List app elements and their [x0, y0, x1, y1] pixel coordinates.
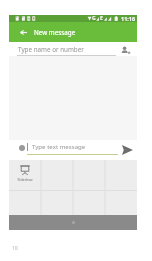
staticText: 11:16	[121, 15, 136, 22]
button[interactable]: Add contact	[117, 43, 133, 57]
button[interactable]: Home	[69, 218, 78, 227]
staticText: E	[100, 15, 103, 22]
staticText: Type name or number	[18, 45, 84, 54]
button[interactable]: Slideshow	[9, 165, 41, 187]
staticText: Slideshow	[17, 178, 33, 182]
button[interactable]: Send	[118, 141, 136, 159]
staticText: New message	[34, 28, 76, 37]
staticText: G	[92, 15, 96, 22]
staticText: 10	[12, 245, 18, 252]
button[interactable]: Emoji	[14, 140, 30, 156]
staticText: Type text message	[32, 142, 86, 150]
button[interactable]: Back	[15, 24, 31, 40]
